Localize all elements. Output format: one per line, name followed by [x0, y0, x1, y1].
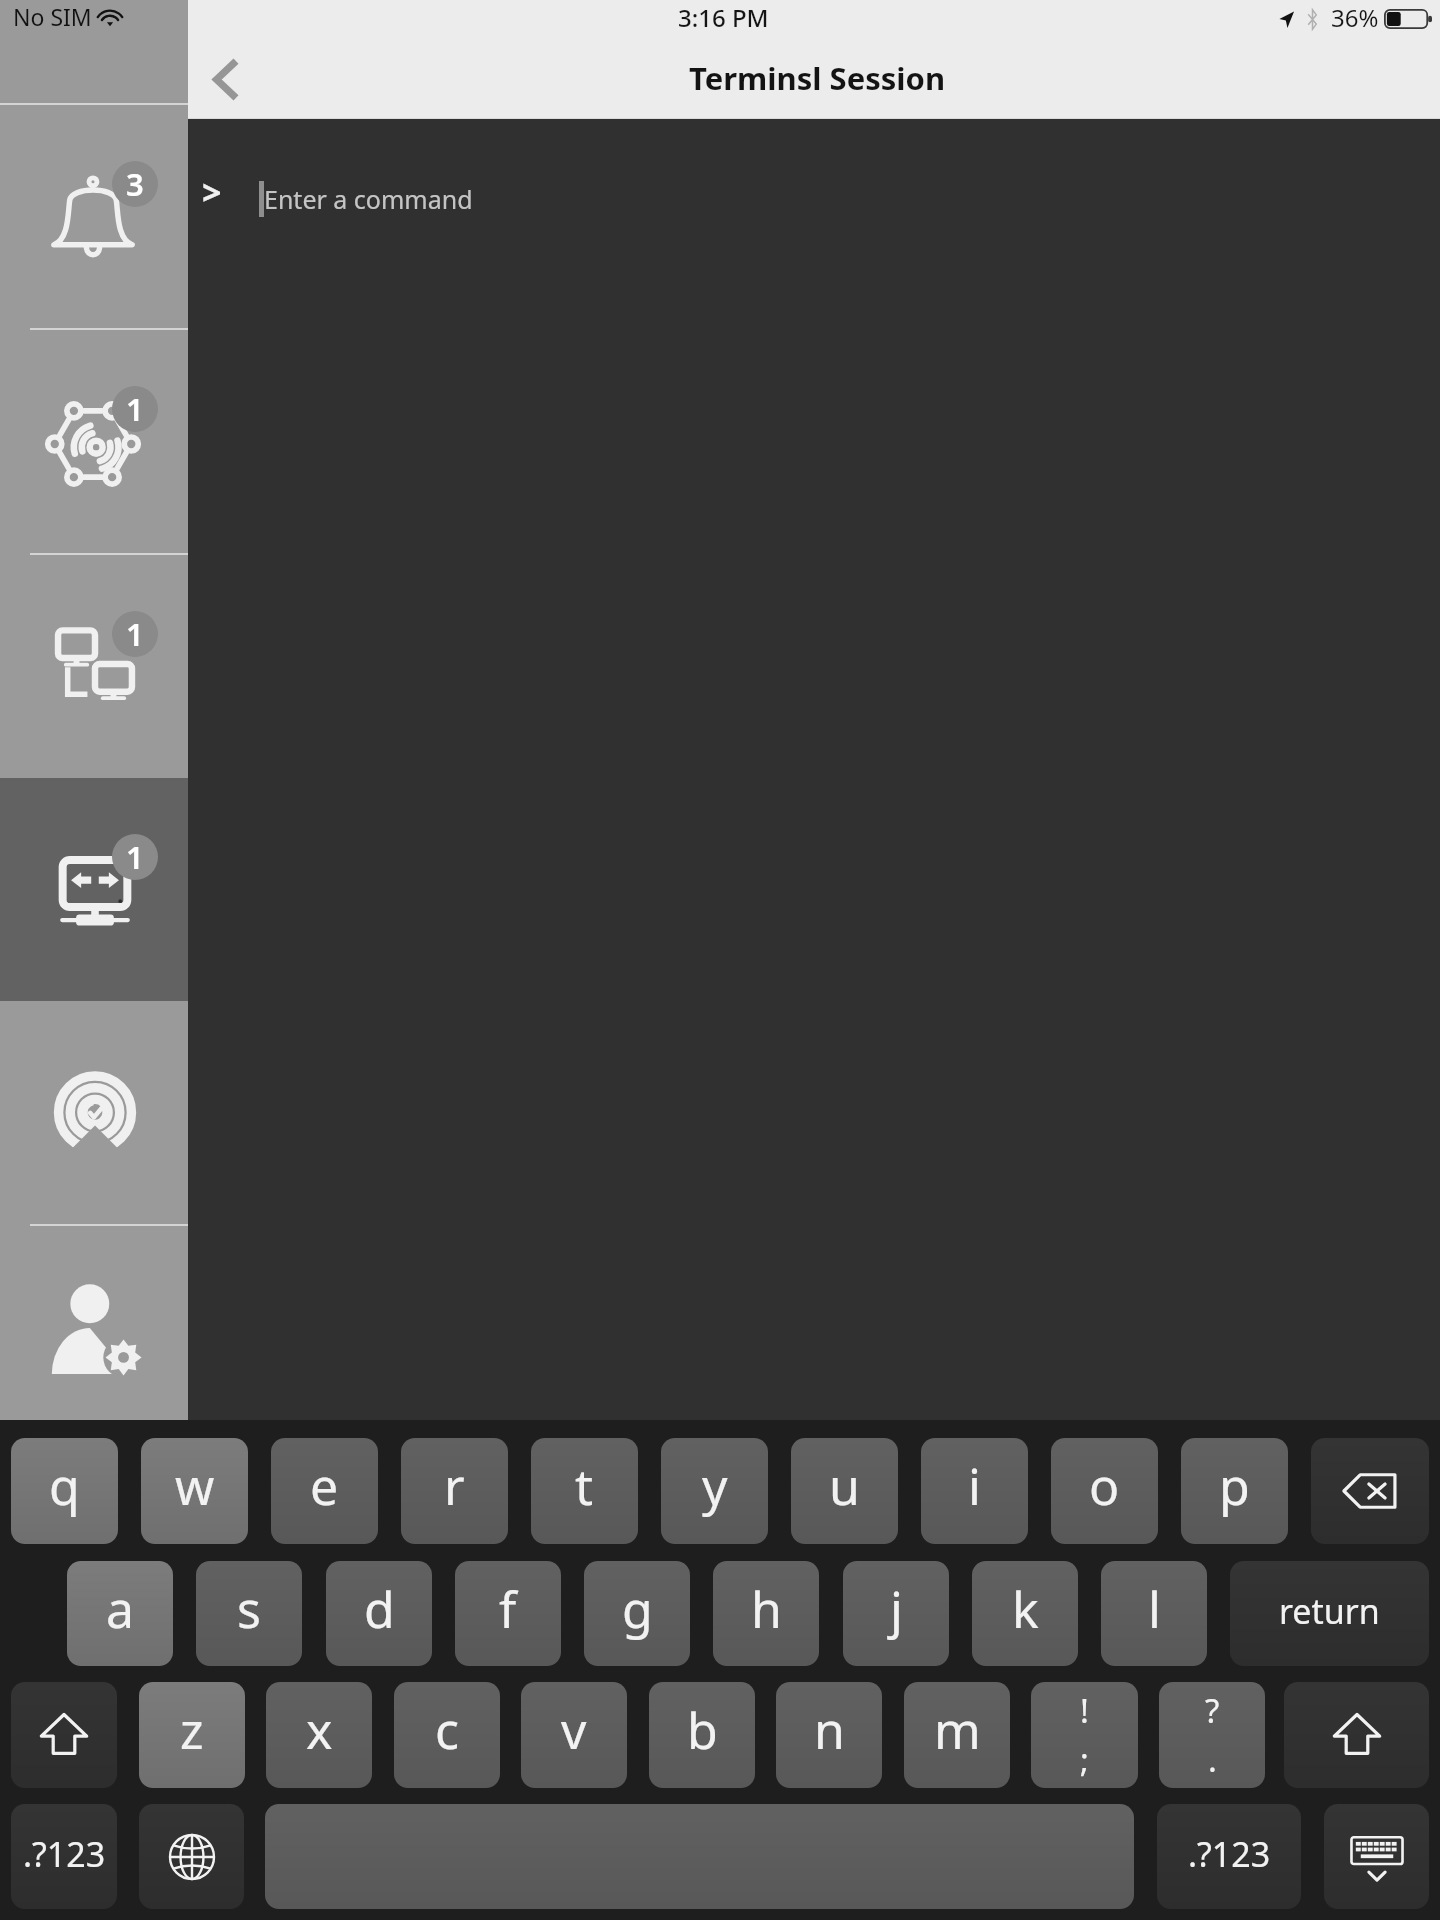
- button[interactable]: f: [455, 1561, 561, 1666]
- staticText: m: [934, 1696, 981, 1764]
- button[interactable]: g: [584, 1561, 690, 1666]
- button[interactable]: q: [11, 1438, 118, 1544]
- staticText: return: [1279, 1588, 1380, 1634]
- button[interactable]: w: [141, 1438, 248, 1544]
- button[interactable]: [265, 1804, 1134, 1909]
- staticText: b: [687, 1696, 718, 1764]
- button[interactable]: t: [531, 1438, 638, 1544]
- button[interactable]: c: [394, 1682, 500, 1788]
- staticText: .?123: [23, 1831, 106, 1877]
- staticText: i: [968, 1452, 981, 1520]
- button[interactable]: Account settings: [0, 1226, 188, 1420]
- button[interactable]: Back: [188, 41, 256, 119]
- staticText: 1: [126, 836, 144, 878]
- staticText: 3:16 PM: [678, 1, 769, 34]
- staticText: x: [306, 1696, 333, 1764]
- staticText: .: [1208, 1737, 1217, 1782]
- staticText: 1: [126, 613, 144, 655]
- button[interactable]: Hide keyboard: [1324, 1804, 1429, 1909]
- button[interactable]: Shift: [11, 1682, 117, 1788]
- staticText: c: [435, 1696, 459, 1764]
- staticText: j: [890, 1575, 903, 1643]
- button[interactable]: >: [188, 119, 1440, 1420]
- staticText: ?: [1205, 1688, 1220, 1733]
- button[interactable]: ?: [1159, 1682, 1265, 1788]
- staticText: d: [364, 1575, 395, 1643]
- staticText: >: [202, 169, 222, 215]
- button[interactable]: s: [196, 1561, 302, 1666]
- button[interactable]: x: [266, 1682, 372, 1788]
- button[interactable]: m: [904, 1682, 1010, 1788]
- staticText: q: [49, 1452, 80, 1520]
- button[interactable]: a: [67, 1561, 173, 1666]
- staticText: a: [106, 1575, 135, 1643]
- staticText: .?123: [1188, 1831, 1271, 1877]
- button[interactable]: z: [139, 1682, 245, 1788]
- staticText: k: [1012, 1575, 1039, 1643]
- button[interactable]: Devices: [0, 555, 188, 778]
- staticText: l: [1148, 1575, 1161, 1643]
- button[interactable]: Backspace: [1311, 1438, 1429, 1544]
- button[interactable]: k: [972, 1561, 1078, 1666]
- button[interactable]: u: [791, 1438, 898, 1544]
- staticText: g: [622, 1575, 653, 1643]
- staticText: r: [444, 1452, 465, 1520]
- staticText: No SIM: [13, 1, 92, 32]
- button[interactable]: Shift: [1284, 1682, 1429, 1788]
- button[interactable]: d: [326, 1561, 432, 1666]
- button[interactable]: return: [1230, 1561, 1429, 1666]
- button[interactable]: o: [1051, 1438, 1158, 1544]
- button[interactable]: Next keyboard: [139, 1804, 244, 1909]
- staticText: o: [1089, 1452, 1120, 1520]
- staticText: w: [175, 1452, 215, 1520]
- button[interactable]: l: [1101, 1561, 1207, 1666]
- staticText: v: [561, 1696, 587, 1764]
- button[interactable]: Terminal session: [0, 778, 188, 1001]
- button[interactable]: j: [843, 1561, 949, 1666]
- button[interactable]: i: [921, 1438, 1028, 1544]
- staticText: e: [310, 1452, 339, 1520]
- staticText: f: [499, 1575, 517, 1643]
- staticText: !: [1080, 1688, 1089, 1733]
- staticText: Enter a command: [264, 182, 473, 216]
- button[interactable]: .?123: [11, 1804, 117, 1909]
- staticText: u: [829, 1452, 860, 1520]
- button[interactable]: n: [776, 1682, 882, 1788]
- staticText: Terminsl Session: [689, 57, 946, 99]
- button[interactable]: Network: [0, 330, 188, 553]
- staticText: s: [237, 1575, 261, 1643]
- staticText: 3: [126, 163, 144, 205]
- button[interactable]: Notifications: [0, 105, 188, 328]
- button[interactable]: b: [649, 1682, 755, 1788]
- staticText: t: [575, 1452, 594, 1520]
- button[interactable]: Scan: [0, 1001, 188, 1224]
- button[interactable]: r: [401, 1438, 508, 1544]
- staticText: z: [180, 1696, 204, 1764]
- button[interactable]: !: [1031, 1682, 1138, 1788]
- button[interactable]: h: [713, 1561, 819, 1666]
- staticText: y: [702, 1452, 728, 1520]
- button[interactable]: v: [521, 1682, 627, 1788]
- staticText: ;: [1080, 1737, 1089, 1782]
- staticText: 36%: [1331, 1, 1379, 34]
- button[interactable]: y: [661, 1438, 768, 1544]
- button[interactable]: e: [271, 1438, 378, 1544]
- button[interactable]: .?123: [1157, 1804, 1301, 1909]
- staticText: p: [1219, 1452, 1250, 1520]
- staticText: h: [751, 1575, 782, 1643]
- staticText: n: [814, 1696, 845, 1764]
- staticText: 1: [126, 388, 144, 430]
- button[interactable]: p: [1181, 1438, 1288, 1544]
